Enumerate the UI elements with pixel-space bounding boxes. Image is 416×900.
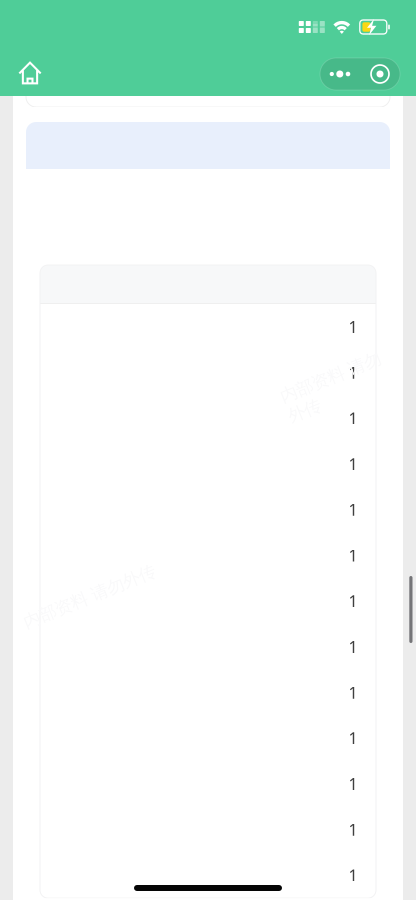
staticText: 1 xyxy=(348,819,357,840)
staticText: 1 xyxy=(348,408,357,429)
button[interactable]: Mini program menu xyxy=(320,56,400,88)
staticText: 1 xyxy=(348,682,357,703)
staticText: 1 xyxy=(348,727,357,749)
staticText: 1 xyxy=(348,773,357,794)
staticText: 1 xyxy=(348,499,357,520)
staticText: 1 xyxy=(348,362,357,383)
staticText: 1 xyxy=(348,316,357,337)
staticText: 1 xyxy=(348,865,357,886)
staticText: 1 xyxy=(348,453,357,474)
staticText: 1 xyxy=(348,545,357,566)
staticText: 1 xyxy=(348,636,357,657)
button[interactable]: Home xyxy=(8,50,52,94)
staticText: 内部资料 请勿外传 xyxy=(281,366,388,409)
staticText: 1 xyxy=(348,590,357,612)
